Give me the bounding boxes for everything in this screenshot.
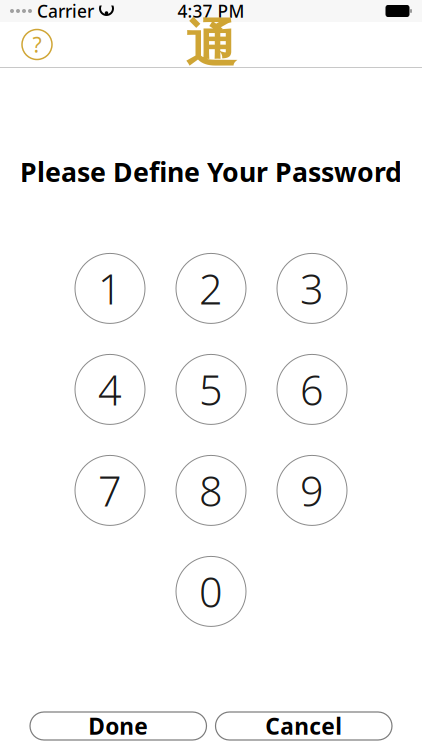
staticText: 8 [199, 463, 223, 518]
button[interactable]: 0 [176, 556, 246, 626]
staticText: Please Define Your Password [20, 154, 402, 189]
staticText: 3 [300, 261, 324, 316]
staticText: 0 [199, 564, 223, 619]
staticText: 1 [98, 261, 122, 316]
staticText: 通 [185, 13, 236, 76]
staticText: 4:37 PM [177, 0, 244, 22]
button[interactable]: 9 [277, 455, 347, 525]
button[interactable]: 3 [277, 253, 347, 323]
staticText: 6 [300, 362, 324, 417]
button[interactable]: Help [22, 29, 52, 59]
staticText: 9 [300, 463, 324, 518]
staticText: ? [32, 30, 41, 59]
staticText: 2 [199, 261, 223, 316]
staticText: Done [88, 711, 148, 741]
button[interactable]: Done [30, 712, 206, 740]
button[interactable]: 1 [75, 253, 145, 323]
button[interactable]: 8 [176, 455, 246, 525]
staticText: Cancel [265, 711, 342, 741]
button[interactable]: 5 [176, 354, 246, 424]
button[interactable]: 4 [75, 354, 145, 424]
staticText: Carrier [37, 0, 94, 22]
staticText: 5 [199, 362, 223, 417]
button[interactable]: 2 [176, 253, 246, 323]
button[interactable]: Cancel [215, 712, 392, 740]
button[interactable]: 6 [277, 354, 347, 424]
staticText: 7 [98, 463, 122, 518]
staticText: 4 [98, 362, 122, 417]
button[interactable]: 7 [75, 455, 145, 525]
